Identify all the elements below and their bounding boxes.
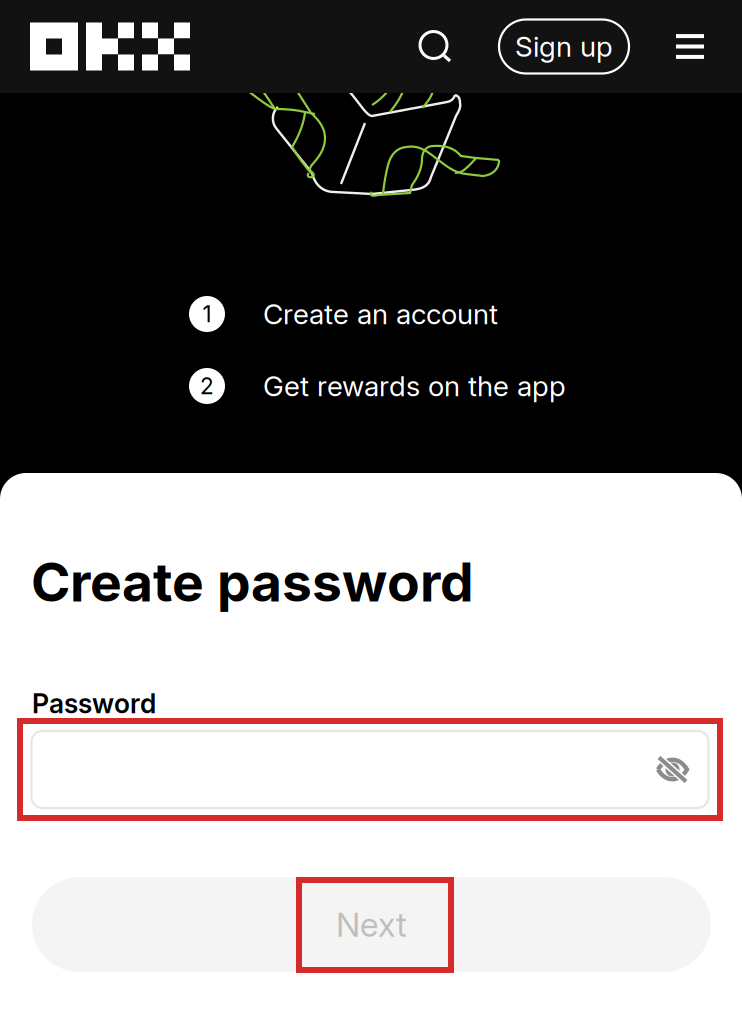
button[interactable]: Next — [32, 877, 711, 972]
staticText: 1 — [202, 300, 211, 328]
staticText: Next — [336, 904, 407, 945]
staticText: Create password — [31, 550, 474, 614]
button[interactable]: Password field — [17, 718, 723, 821]
staticText: 2 — [200, 372, 214, 400]
button[interactable]: Search — [411, 0, 463, 93]
staticText: Sign up — [515, 30, 613, 63]
staticText: Password — [32, 687, 156, 720]
staticText: Get rewards on the app — [263, 369, 566, 403]
button[interactable]: OKX home — [0, 0, 200, 93]
button[interactable]: Menu — [673, 0, 707, 93]
staticText: Create an account — [263, 297, 498, 331]
button[interactable]: Sign up — [499, 19, 629, 73]
